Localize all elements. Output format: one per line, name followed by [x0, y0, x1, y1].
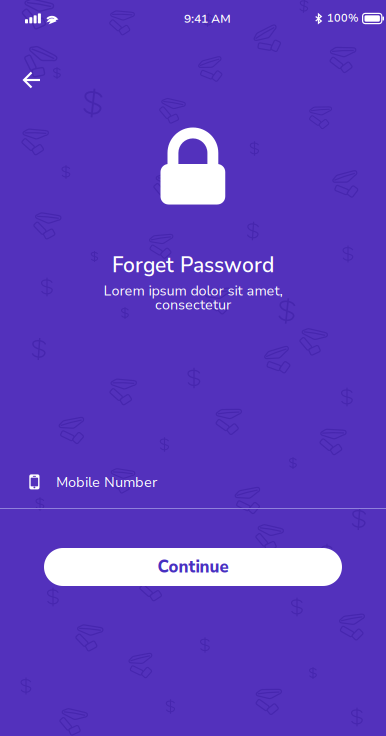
button[interactable]: Back: [0, 57, 60, 102]
staticText: consectetur: [155, 295, 231, 314]
staticText: Forget Password: [112, 251, 274, 280]
staticText: Continue: [157, 556, 228, 578]
staticText: Mobile Number: [56, 473, 157, 492]
button[interactable]: Continue: [44, 548, 342, 586]
staticText: 9:41 AM: [184, 10, 231, 27]
staticText: Lorem ipsum dolor sit amet,: [103, 281, 282, 300]
staticText: 100%: [327, 11, 358, 26]
